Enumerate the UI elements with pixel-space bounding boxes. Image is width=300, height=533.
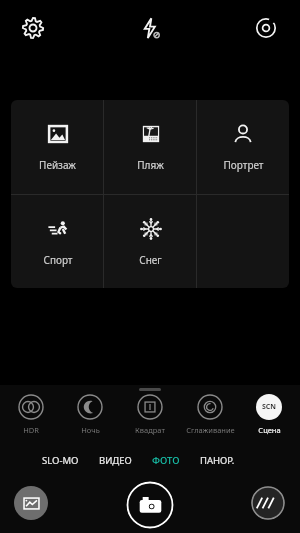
staticText: SLO-MO bbox=[42, 454, 79, 467]
staticText: Пейзаж bbox=[39, 158, 76, 172]
button[interactable]: ВИДЕО bbox=[97, 452, 134, 469]
button[interactable]: Пейзаж bbox=[11, 100, 104, 194]
button[interactable]: Квадрат bbox=[121, 394, 179, 435]
button[interactable]: Ночь bbox=[61, 394, 119, 435]
staticText: Квадрат bbox=[135, 425, 165, 435]
button[interactable]: SLO-MO bbox=[40, 452, 81, 469]
staticText: Пляж bbox=[137, 158, 164, 172]
button[interactable]: Снег bbox=[104, 195, 197, 288]
button[interactable]: ФОТО bbox=[150, 452, 182, 469]
button[interactable]: HDR bbox=[2, 394, 60, 435]
button[interactable]: Сглаживание bbox=[181, 394, 239, 435]
staticText: ПАНОР. bbox=[200, 454, 235, 467]
button[interactable]: Спорт bbox=[11, 195, 104, 288]
button[interactable]: Shutter bbox=[126, 481, 174, 529]
staticText: Спорт bbox=[43, 253, 73, 267]
button[interactable]: Switch camera bbox=[249, 11, 283, 45]
button[interactable]: Пляж bbox=[104, 100, 197, 194]
button[interactable]: Flash off bbox=[133, 11, 167, 45]
staticText: Сцена bbox=[258, 425, 281, 435]
staticText: SCN bbox=[262, 402, 277, 412]
staticText: Сглаживание bbox=[186, 425, 235, 435]
staticText: ВИДЕО bbox=[99, 454, 132, 467]
staticText: Ночь bbox=[81, 425, 100, 435]
button[interactable]: ПАНОР. bbox=[198, 452, 237, 469]
button[interactable]: Портрет bbox=[197, 100, 289, 194]
button[interactable]: SCN bbox=[240, 394, 298, 435]
staticText: HDR bbox=[23, 425, 39, 435]
staticText: Портрет bbox=[223, 158, 264, 172]
button[interactable]: Settings bbox=[16, 11, 50, 45]
button[interactable]: Gallery bbox=[14, 486, 48, 520]
button[interactable]: Filters bbox=[251, 486, 285, 520]
staticText: Снег bbox=[139, 253, 162, 267]
staticText: ФОТО bbox=[152, 454, 180, 467]
